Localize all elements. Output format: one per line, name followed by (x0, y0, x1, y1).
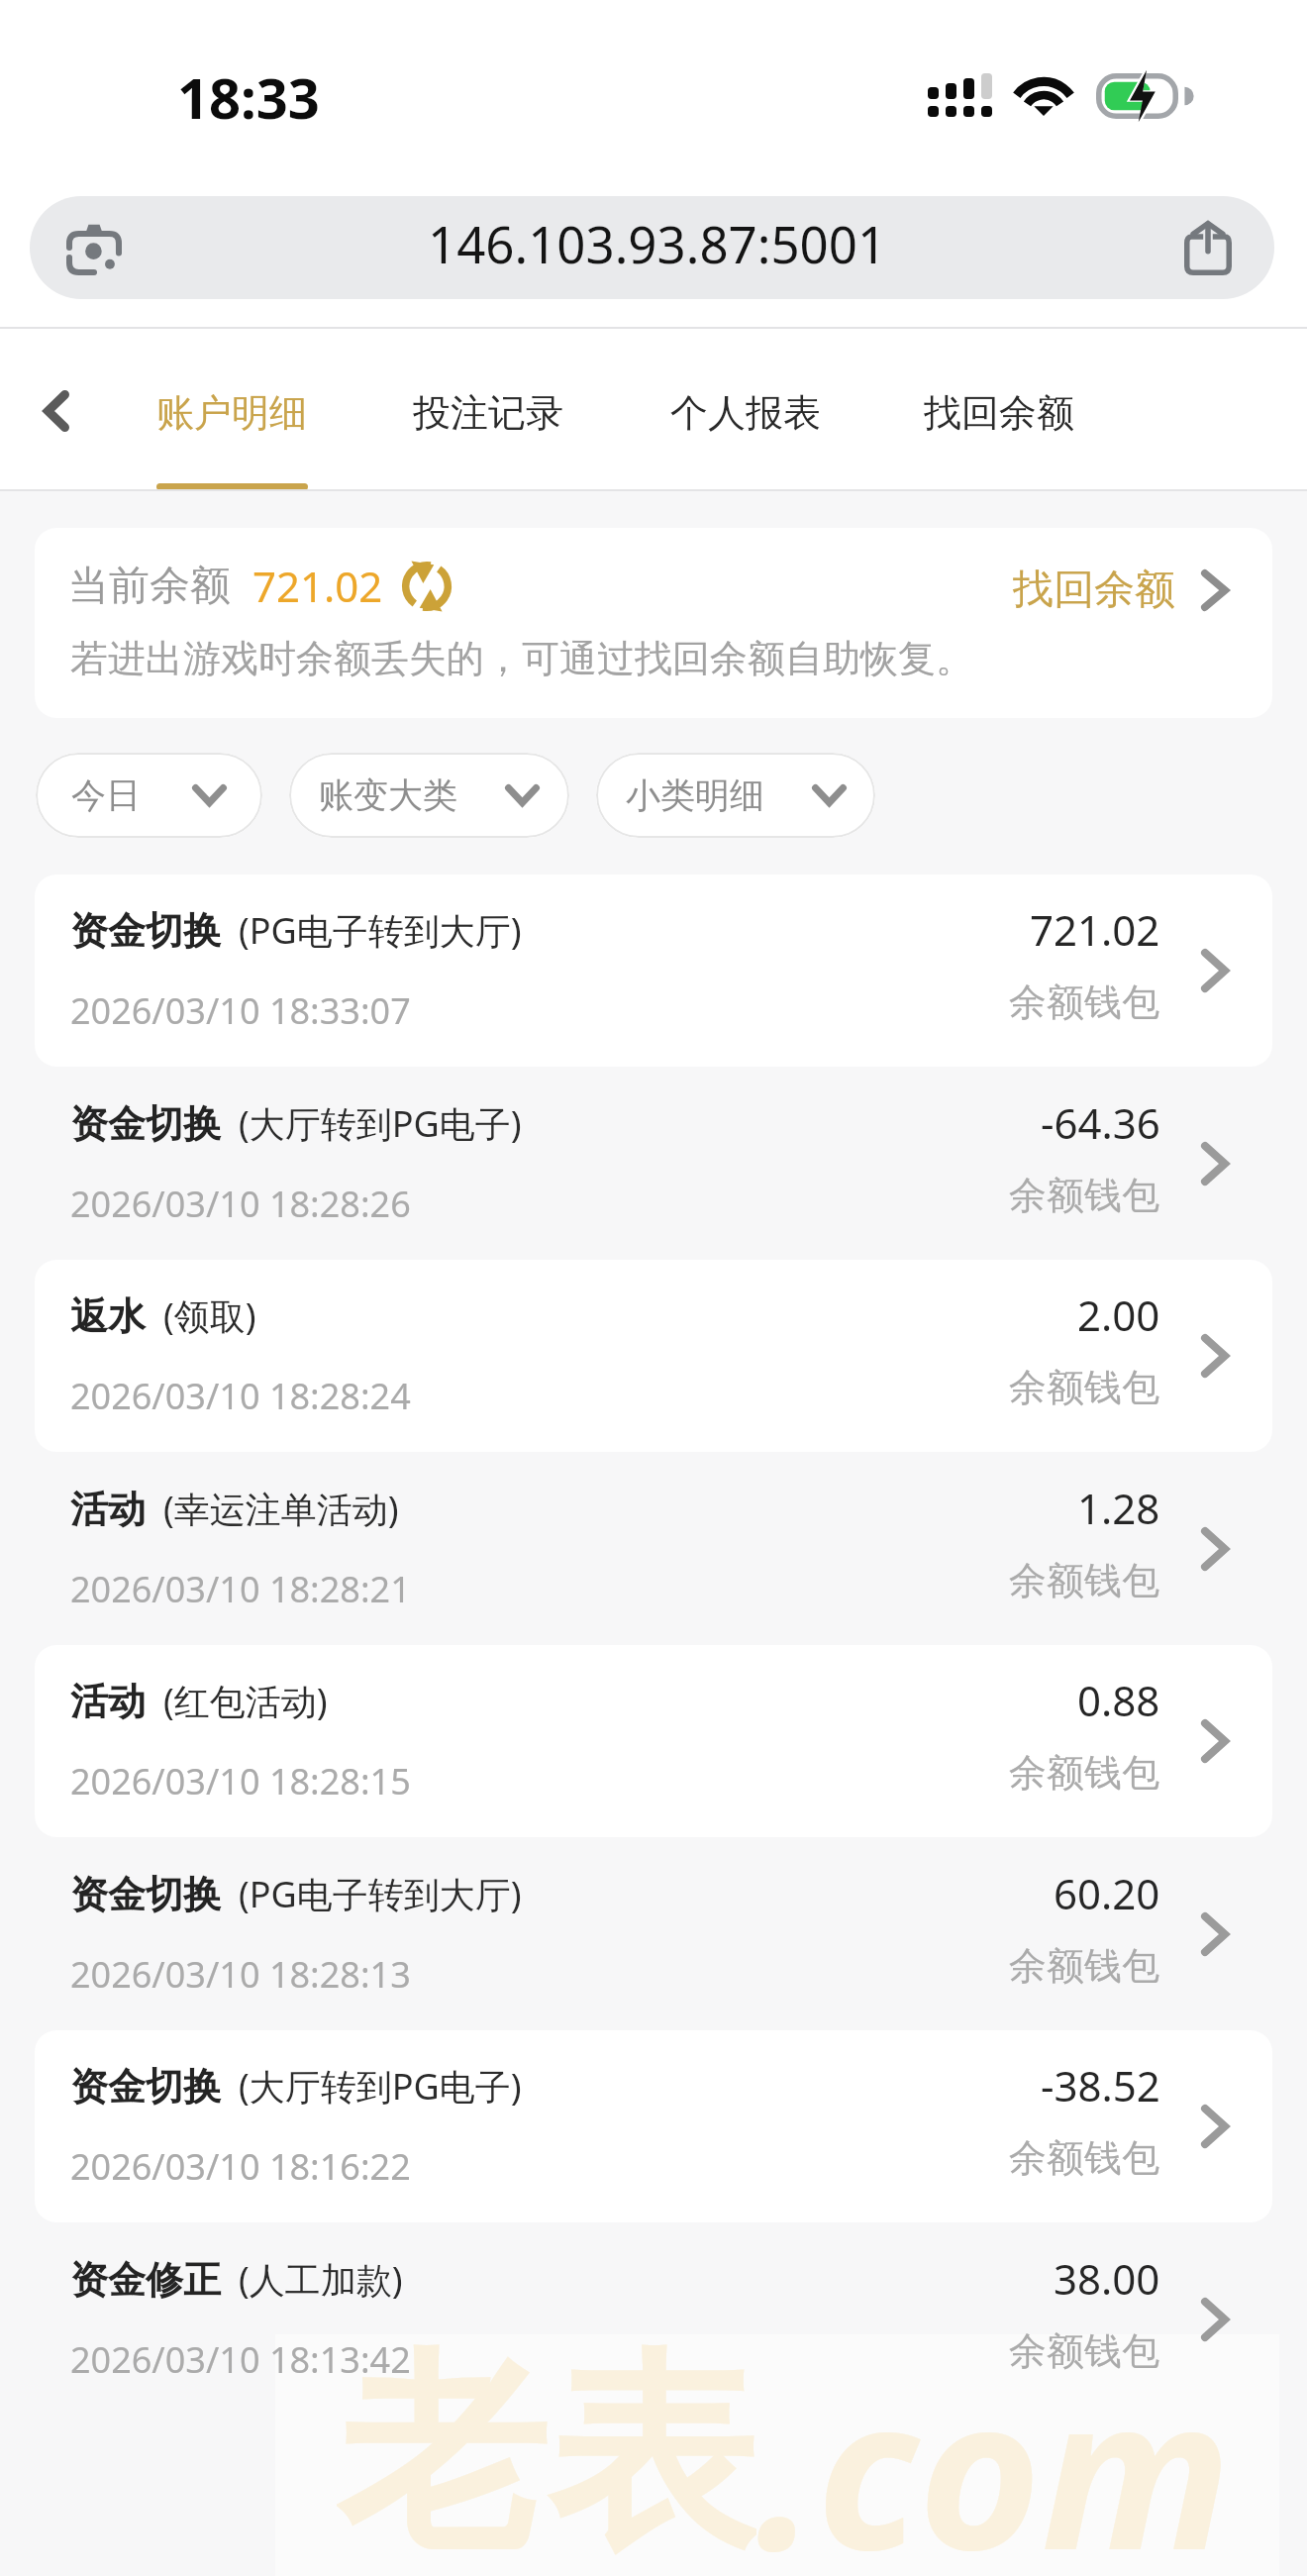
staticText: (大厅转到PG电子) (239, 2062, 522, 2111)
button[interactable]: 账户明细 (156, 329, 315, 489)
staticText: 2026/03/10 18:28:26 (70, 1180, 411, 1228)
staticText: (红包活动) (163, 1677, 328, 1725)
staticText: .com (756, 2324, 1232, 2566)
staticText: 2026/03/10 18:16:22 (70, 2142, 411, 2191)
staticText: -64.36 (1041, 1094, 1160, 1151)
staticText: 余额钱包 (1009, 1557, 1159, 1604)
staticText: 18:33 (177, 59, 320, 135)
staticText: 资金切换 (70, 1871, 221, 1918)
staticText: (大厅转到PG电子) (239, 1099, 522, 1148)
staticText: 找回余额 (924, 389, 1074, 437)
staticText: 投注记录 (413, 389, 563, 437)
staticText: 活动 (70, 1486, 146, 1533)
button[interactable]: 账变大类 (289, 753, 569, 838)
staticText: 2.00 (1077, 1287, 1160, 1343)
staticText: 2026/03/10 18:28:24 (70, 1372, 411, 1420)
staticText: 资金切换 (70, 2063, 221, 2111)
button[interactable]: 个人报表 (670, 329, 829, 489)
staticText: 活动 (70, 1678, 146, 1725)
staticText: 2026/03/10 18:28:21 (70, 1565, 411, 1613)
staticText: 资金修正 (70, 2256, 221, 2304)
staticText: 余额钱包 (1009, 1749, 1159, 1797)
staticText: 返水 (70, 1292, 146, 1340)
staticText: 余额钱包 (1009, 2134, 1159, 2182)
staticText: 今日 (71, 773, 141, 817)
staticText: 当前余额 (68, 561, 231, 612)
staticText: 余额钱包 (1009, 979, 1159, 1026)
staticText: 若进出游戏时余额丢失的，可通过找回余额自助恢复。 (70, 635, 973, 682)
staticText: 38.00 (1054, 2250, 1160, 2307)
button[interactable]: 返水 (35, 1260, 1272, 1452)
staticText: 老表 (337, 2324, 756, 2566)
button[interactable]: Back (18, 372, 95, 450)
button[interactable]: Search with camera (30, 196, 1274, 299)
staticText: -38.52 (1041, 2057, 1160, 2113)
button[interactable]: 资金切换 (35, 1068, 1272, 1260)
staticText: 余额钱包 (1009, 2327, 1159, 2375)
staticText: 账变大类 (319, 773, 457, 817)
button[interactable]: 资金切换 (35, 875, 1272, 1067)
staticText: 账户明细 (156, 389, 307, 437)
staticText: 资金切换 (70, 907, 221, 955)
staticText: 2026/03/10 18:33:07 (70, 986, 411, 1035)
button[interactable]: 资金切换 (35, 2030, 1272, 2222)
staticText: 1.28 (1077, 1480, 1160, 1536)
staticText: 2026/03/10 18:13:42 (70, 2335, 411, 2384)
button[interactable]: 资金切换 (35, 1838, 1272, 2030)
staticText: 余额钱包 (1009, 1364, 1159, 1411)
staticText: 个人报表 (670, 389, 821, 437)
button[interactable]: 资金修正 (35, 2223, 1272, 2416)
staticText: 60.20 (1054, 1865, 1160, 1921)
staticText: 146.103.93.87:5001 (428, 209, 887, 277)
button[interactable]: 投注记录 (413, 329, 571, 489)
staticText: 余额钱包 (1009, 1942, 1159, 1990)
button[interactable]: Share (1177, 217, 1239, 278)
staticText: 2026/03/10 18:28:15 (70, 1757, 411, 1805)
staticText: 0.88 (1077, 1672, 1160, 1728)
staticText: 资金切换 (70, 1100, 221, 1148)
staticText: (PG电子转到大厅) (239, 1870, 522, 1918)
button[interactable]: 活动 (35, 1453, 1272, 1645)
staticText: (幸运注单活动) (163, 1485, 399, 1533)
button[interactable]: 小类明细 (596, 753, 875, 838)
staticText: (领取) (163, 1291, 256, 1340)
staticText: 721.02 (1030, 901, 1160, 958)
staticText: 2026/03/10 18:28:13 (70, 1950, 411, 1999)
staticText: (PG电子转到大厅) (239, 906, 522, 955)
button[interactable]: 找回余额 (1013, 565, 1229, 616)
button[interactable]: 今日 (36, 753, 262, 838)
button[interactable]: 活动 (35, 1645, 1272, 1837)
button[interactable]: 找回余额 (924, 329, 1082, 489)
staticText: 余额钱包 (1009, 1172, 1159, 1219)
button[interactable]: Search with camera (63, 217, 125, 278)
staticText: 小类明细 (626, 773, 764, 817)
staticText: 721.02 (252, 558, 383, 614)
staticText: 找回余额 (1013, 565, 1175, 616)
staticText: (人工加款) (239, 2255, 403, 2304)
button[interactable]: 当前余额 (35, 528, 1272, 718)
